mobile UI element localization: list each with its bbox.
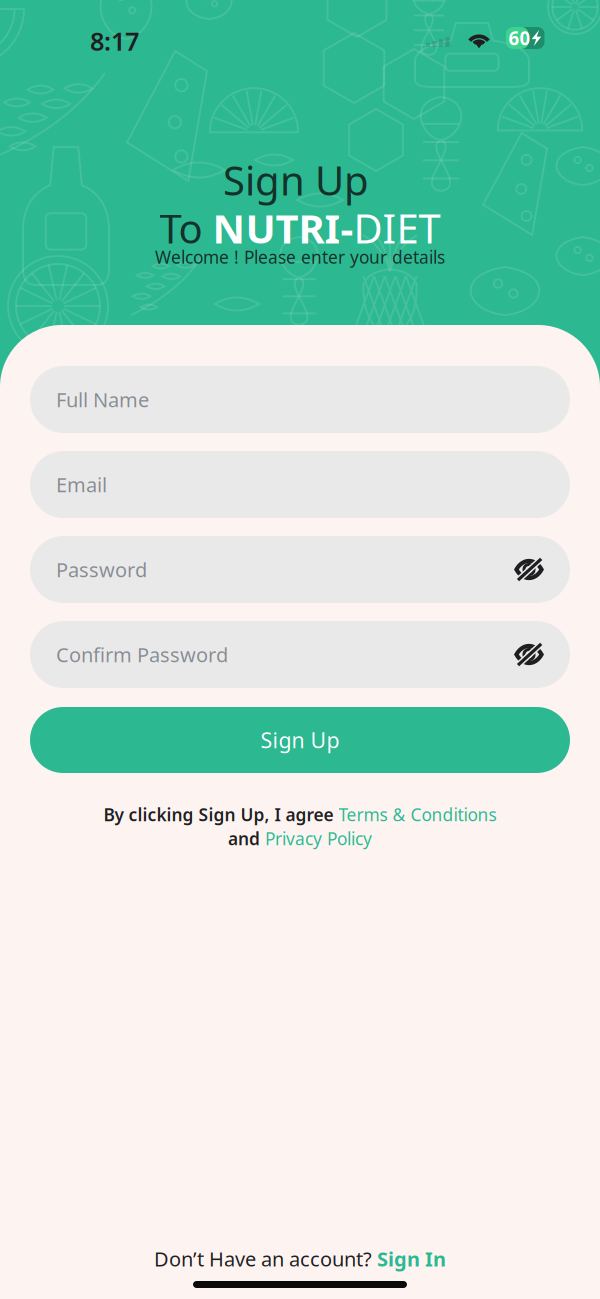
staticText: Sign In xyxy=(377,1245,446,1272)
staticText: Password xyxy=(56,556,147,583)
staticText: and xyxy=(228,827,265,850)
staticText: Sign Up xyxy=(260,726,339,754)
staticText: NUTRI- xyxy=(212,201,353,254)
staticText: To xyxy=(159,201,212,254)
button[interactable]: Sign In xyxy=(377,1245,446,1272)
button[interactable]: Email xyxy=(30,451,570,518)
button[interactable]: Terms & Conditions xyxy=(338,803,496,826)
staticText: Terms & Conditions xyxy=(338,803,496,826)
staticText: Don’t Have an account? xyxy=(154,1245,377,1272)
button[interactable]: Privacy Policy xyxy=(265,827,372,850)
staticText: Sign Up xyxy=(223,153,369,206)
button[interactable]: Full Name xyxy=(30,366,570,433)
staticText: By clicking Sign Up, I agree xyxy=(103,803,338,826)
staticText: 60 xyxy=(508,26,530,50)
staticText: Privacy Policy xyxy=(265,827,372,850)
staticText: Full Name xyxy=(56,386,149,413)
staticText: Confirm Password xyxy=(56,641,228,668)
button[interactable]: Confirm Password xyxy=(30,621,570,688)
button[interactable]: Password xyxy=(30,536,570,603)
staticText: Email xyxy=(56,471,107,498)
staticText: 8:17 xyxy=(90,24,139,58)
button[interactable]: Sign Up xyxy=(30,707,570,773)
staticText: Welcome ! Please enter your details xyxy=(155,245,445,268)
staticText: DIET xyxy=(353,201,440,254)
